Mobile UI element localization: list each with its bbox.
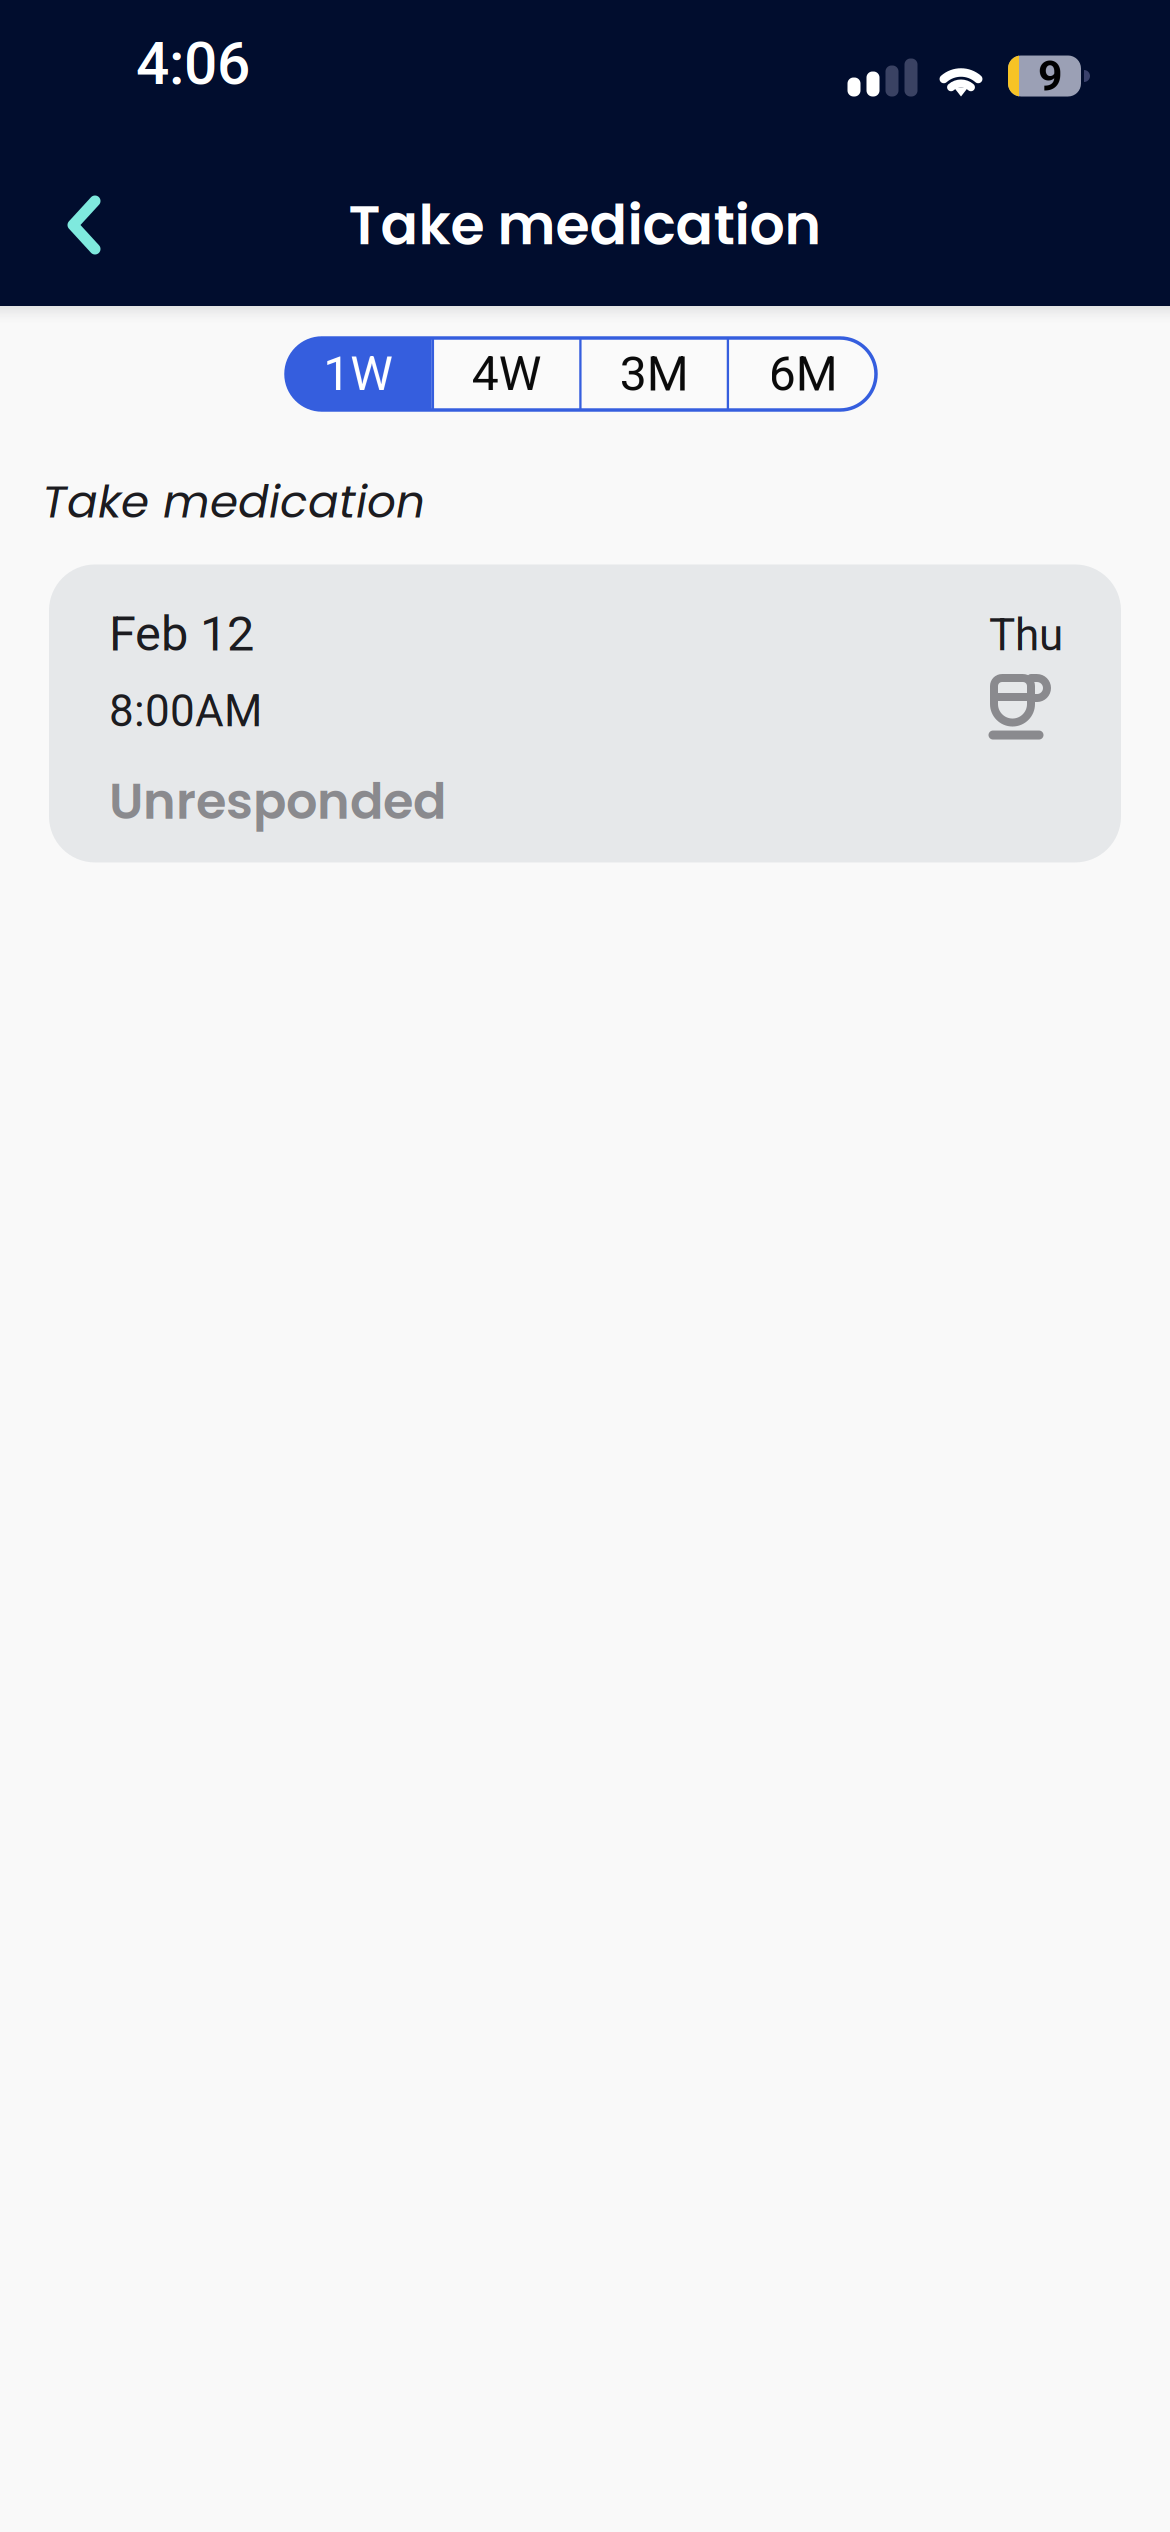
button[interactable]: 6M — [729, 338, 877, 410]
staticText: Take medication — [348, 186, 821, 264]
staticText: Feb 12 — [109, 605, 254, 662]
staticText: Thu — [989, 609, 1063, 661]
staticText: 1W — [323, 346, 393, 402]
staticText: Take medication — [42, 470, 425, 533]
staticText: 4W — [472, 346, 542, 402]
staticText: Unresponded — [109, 767, 446, 836]
staticText: 6M — [769, 346, 838, 402]
staticText: 8:00AM — [109, 685, 262, 737]
button[interactable]: Feb 12 — [49, 564, 1121, 862]
staticText: 4:06 — [136, 30, 250, 98]
button[interactable]: 3M — [582, 338, 727, 410]
staticText: 9 — [1038, 51, 1062, 101]
button[interactable]: 4W — [434, 338, 579, 410]
button[interactable]: Back — [34, 165, 134, 269]
staticText: 3M — [620, 346, 689, 402]
button[interactable]: 1W — [285, 338, 432, 410]
